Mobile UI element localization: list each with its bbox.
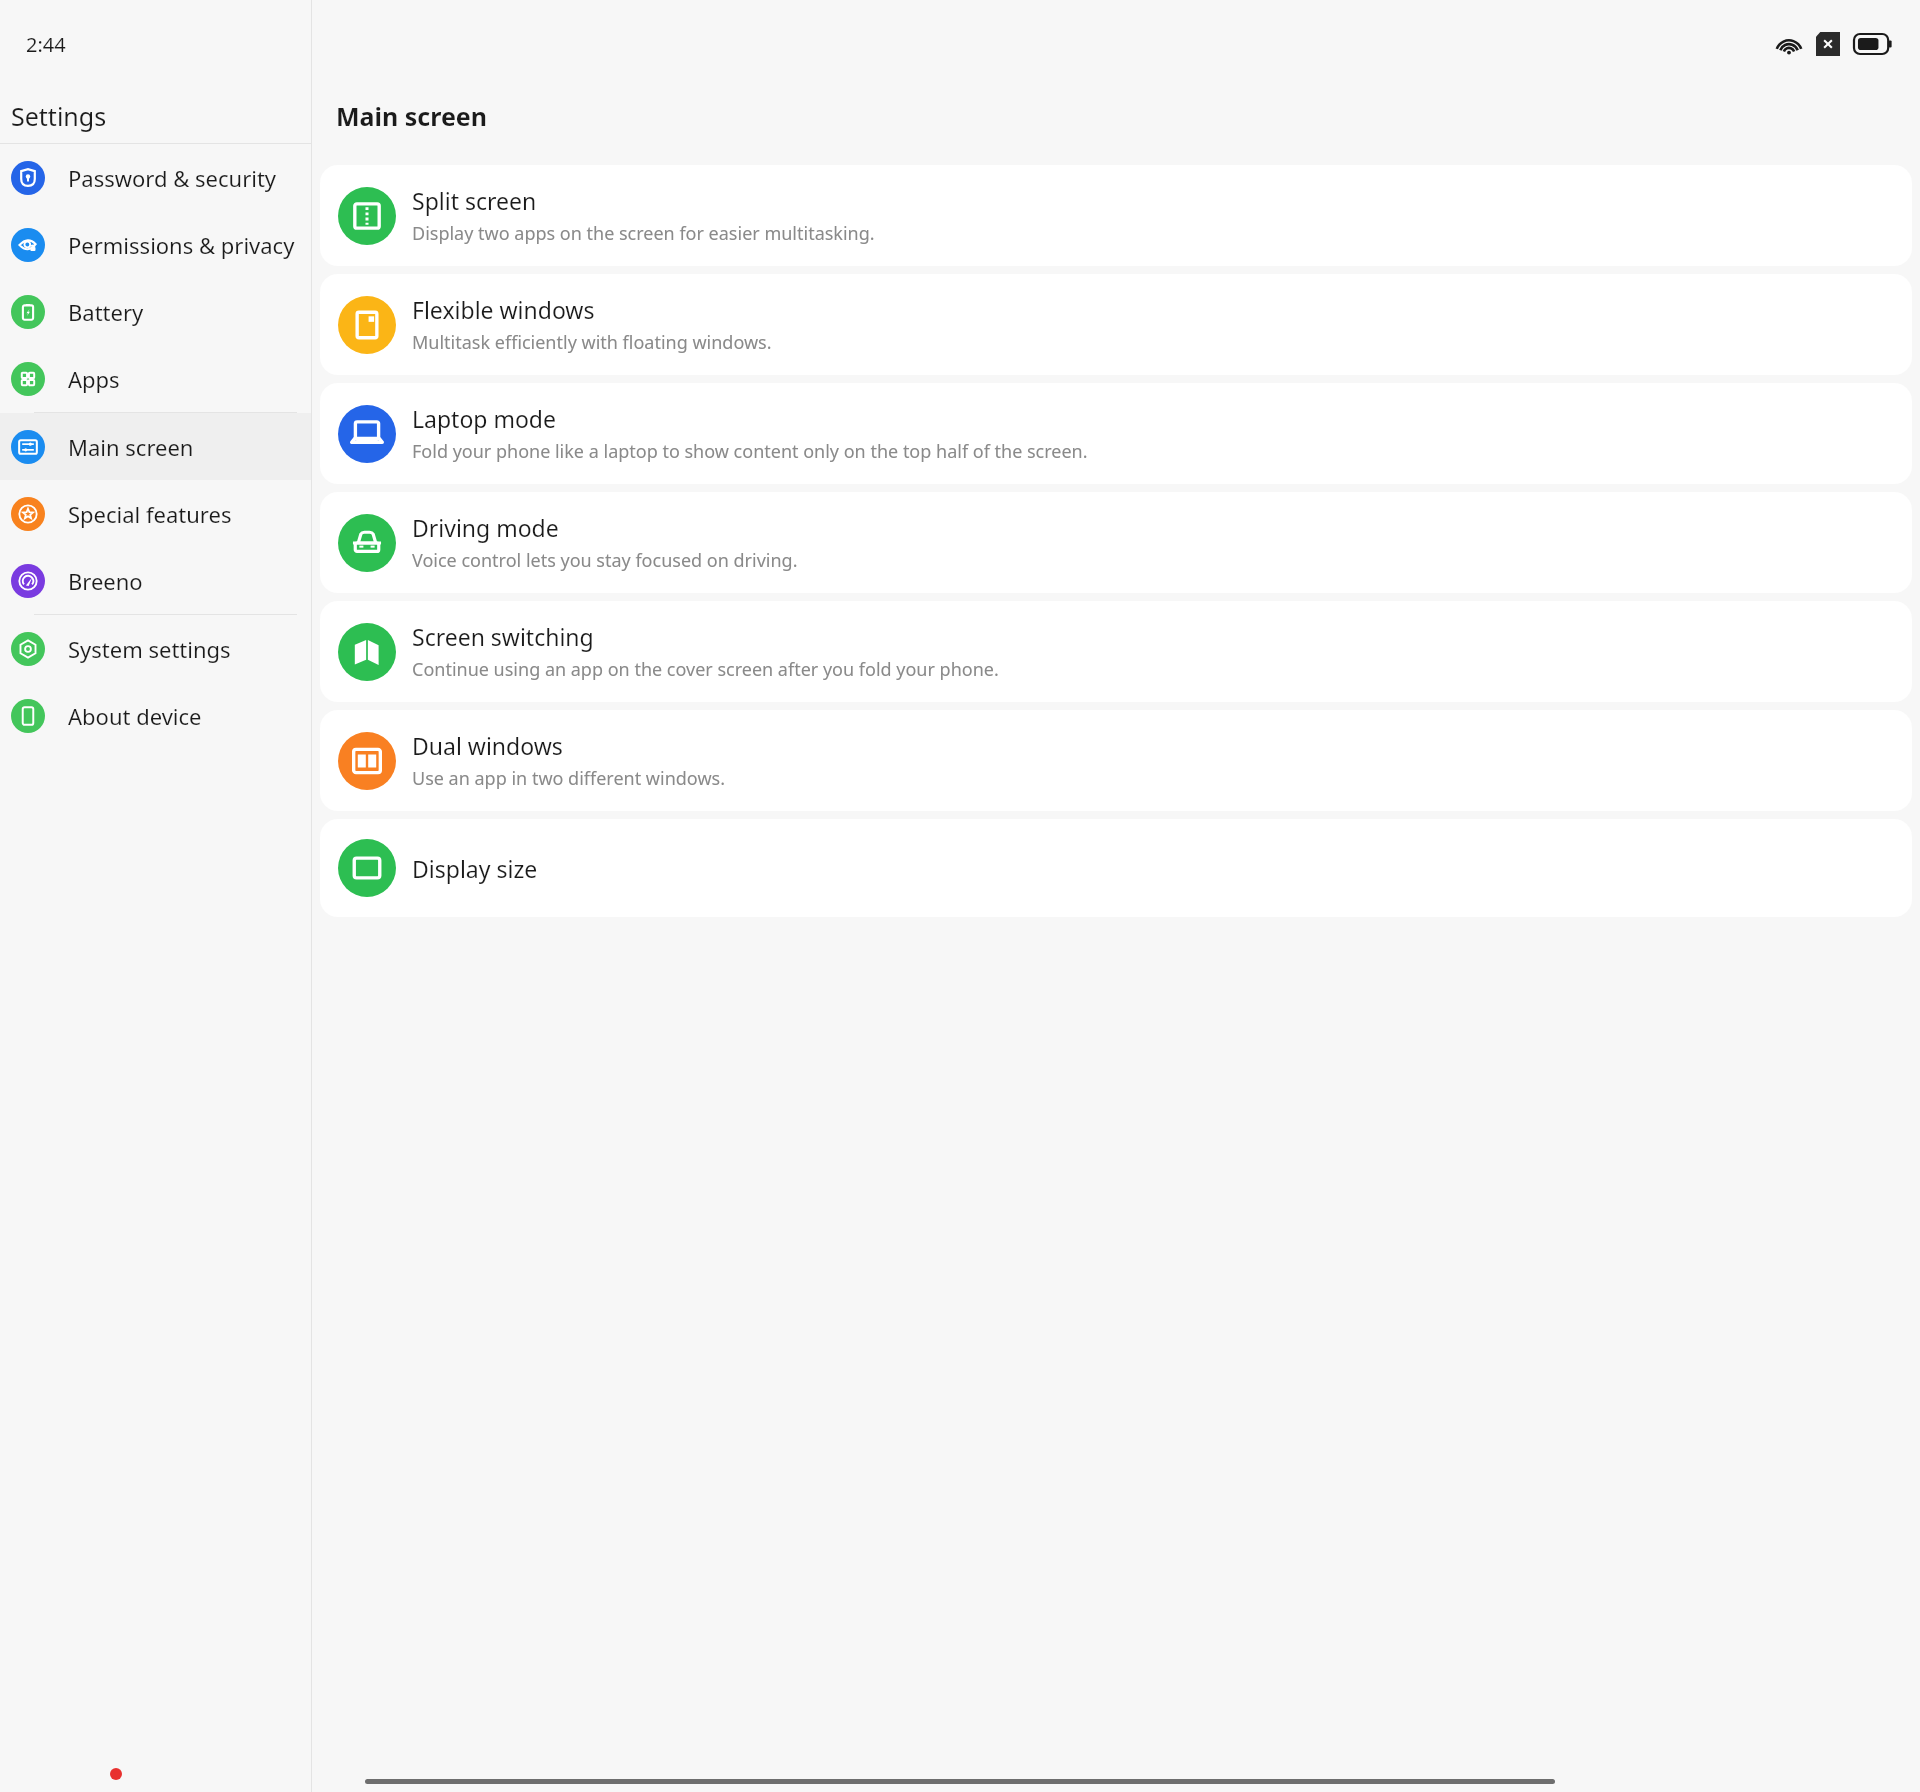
staticText: Password & security bbox=[68, 163, 277, 193]
button[interactable]: Permissions & privacy bbox=[0, 211, 311, 278]
button[interactable]: Main screen bbox=[0, 413, 311, 480]
staticText: System settings bbox=[68, 634, 231, 664]
button[interactable]: Apps bbox=[0, 345, 311, 412]
button[interactable]: Screen switching bbox=[320, 601, 1912, 702]
button[interactable]: Display size bbox=[320, 819, 1912, 917]
staticText: Use an app in two different windows. bbox=[412, 766, 725, 791]
staticText: 2:44 bbox=[26, 31, 66, 58]
staticText: Main screen bbox=[68, 432, 194, 462]
staticText: Screen switching bbox=[412, 621, 594, 652]
staticText: Main screen bbox=[336, 99, 488, 133]
other: Battery bbox=[1854, 34, 1892, 54]
staticText: Special features bbox=[68, 499, 232, 529]
button[interactable]: Split screen bbox=[320, 165, 1912, 266]
staticText: Display size bbox=[412, 853, 538, 884]
staticText: Breeno bbox=[68, 566, 143, 596]
button[interactable]: Password & security bbox=[0, 144, 311, 211]
button[interactable]: Driving mode bbox=[320, 492, 1912, 593]
staticText: Fold your phone like a laptop to show co… bbox=[412, 439, 1088, 464]
other: No SIM bbox=[1816, 32, 1840, 56]
button[interactable]: Dual windows bbox=[320, 710, 1912, 811]
button[interactable]: System settings bbox=[0, 615, 311, 682]
button[interactable]: Laptop mode bbox=[320, 383, 1912, 484]
button[interactable]: Flexible windows bbox=[320, 274, 1912, 375]
staticText: Continue using an app on the cover scree… bbox=[412, 657, 999, 682]
staticText: About device bbox=[68, 701, 202, 731]
button[interactable]: Battery bbox=[0, 278, 311, 345]
other: Wi-Fi bbox=[1776, 31, 1802, 57]
button[interactable]: Breeno bbox=[0, 547, 311, 614]
staticText: Driving mode bbox=[412, 512, 559, 543]
staticText: Display two apps on the screen for easie… bbox=[412, 221, 875, 246]
staticText: Settings bbox=[11, 99, 107, 133]
staticText: Split screen bbox=[412, 185, 537, 216]
staticText: Permissions & privacy bbox=[68, 230, 295, 260]
staticText: Flexible windows bbox=[412, 294, 595, 325]
staticText: Apps bbox=[68, 364, 120, 394]
staticText: Voice control lets you stay focused on d… bbox=[412, 548, 798, 573]
staticText: Dual windows bbox=[412, 730, 563, 761]
staticText: Battery bbox=[68, 297, 144, 327]
button[interactable]: Special features bbox=[0, 480, 311, 547]
button[interactable]: About device bbox=[0, 682, 311, 749]
staticText: Multitask efficiently with floating wind… bbox=[412, 330, 772, 355]
staticText: Laptop mode bbox=[412, 403, 556, 434]
